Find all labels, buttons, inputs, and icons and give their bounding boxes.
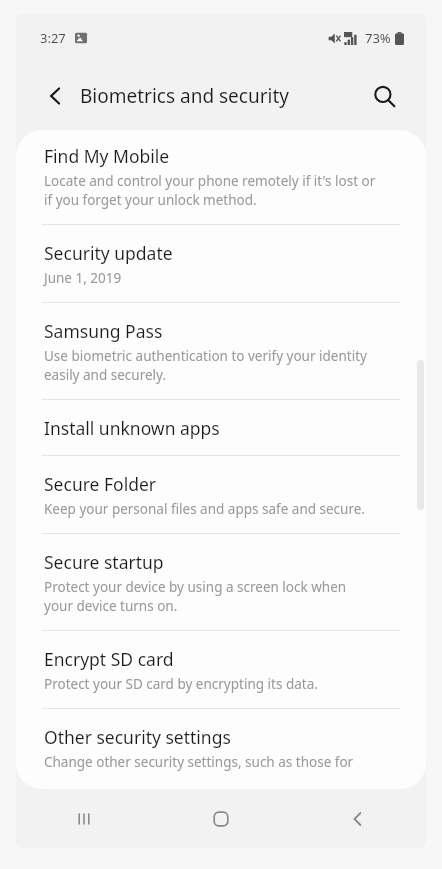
button[interactable]: Search (364, 76, 404, 116)
staticText: if you forget your unlock method. (44, 191, 257, 209)
button[interactable]: Home (152, 789, 289, 848)
staticText: Secure Folder (44, 472, 157, 496)
button[interactable]: Encrypt SD card (16, 631, 426, 708)
staticText: Secure startup (44, 550, 164, 574)
staticText: easily and securely. (44, 366, 167, 384)
staticText: Other security settings (44, 725, 231, 749)
button[interactable]: Recents (16, 789, 152, 848)
staticText: Protect your SD card by encrypting its d… (44, 675, 318, 693)
staticText: June 1, 2019 (44, 269, 122, 287)
staticText: Keep your personal files and apps safe a… (44, 500, 365, 518)
staticText: Install unknown apps (44, 416, 220, 440)
staticText: Locate and control your phone remotely i… (44, 172, 376, 190)
button[interactable]: Security update (16, 225, 426, 302)
staticText: Change other security settings, such as … (44, 753, 354, 771)
staticText: Security update (44, 241, 173, 265)
staticText: Use biometric authentication to verify y… (44, 347, 367, 365)
staticText: Encrypt SD card (44, 647, 174, 671)
staticText: Biometrics and security (80, 83, 290, 109)
button[interactable]: Install unknown apps (16, 400, 426, 455)
staticText: 73% (365, 29, 391, 47)
button[interactable]: Other security settings (16, 709, 426, 789)
button[interactable]: Secure Folder (16, 456, 426, 533)
button[interactable]: Samsung Pass (16, 303, 426, 399)
staticText: Protect your device by using a screen lo… (44, 578, 347, 596)
staticText: Samsung Pass (44, 319, 163, 343)
button[interactable]: Back (38, 78, 74, 114)
staticText: your device turns on. (44, 597, 178, 615)
staticText: 3:27 (40, 29, 66, 47)
staticText: Find My Mobile (44, 144, 170, 168)
button[interactable]: Secure startup (16, 534, 426, 630)
button[interactable]: Find My Mobile (16, 130, 426, 224)
button[interactable]: Back (289, 789, 426, 848)
